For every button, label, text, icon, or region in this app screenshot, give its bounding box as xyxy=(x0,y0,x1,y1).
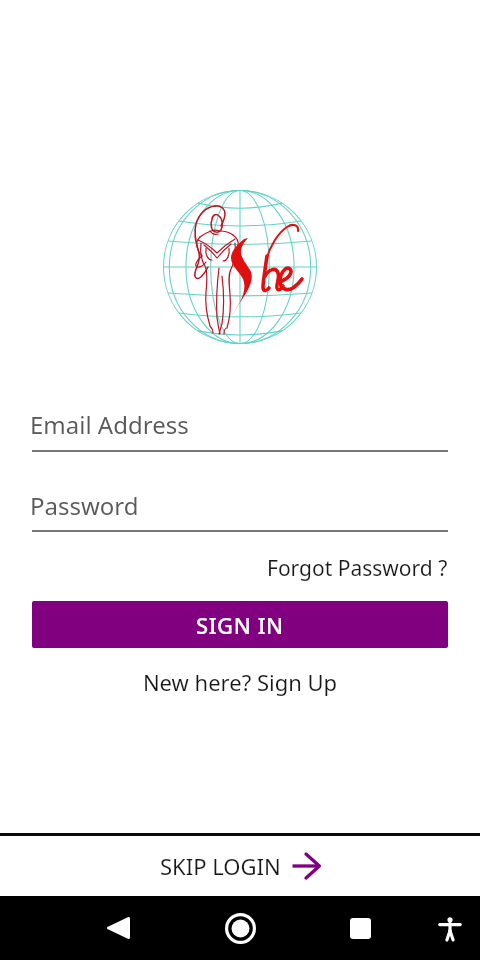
button[interactable]: New here? Sign Up xyxy=(0,664,480,700)
button[interactable]: Recent apps xyxy=(336,896,384,960)
staticText: New here? Sign Up xyxy=(0,667,480,697)
staticText: SIGN IN xyxy=(196,610,284,640)
button[interactable]: Home xyxy=(216,896,264,960)
button[interactable]: SKIP LOGIN xyxy=(0,836,480,896)
staticText: Forgot Password ? xyxy=(267,554,448,583)
button[interactable]: Back xyxy=(94,896,142,960)
button[interactable]: SIGN IN xyxy=(32,601,448,648)
staticText: Email Address xyxy=(30,408,189,441)
button[interactable]: Password xyxy=(30,482,446,528)
button[interactable]: Forgot Password ? xyxy=(240,552,448,584)
button[interactable]: Accessibility xyxy=(428,896,472,960)
button[interactable]: Email Address xyxy=(30,401,446,447)
staticText: Password xyxy=(30,489,139,522)
staticText: SKIP LOGIN xyxy=(160,851,281,881)
